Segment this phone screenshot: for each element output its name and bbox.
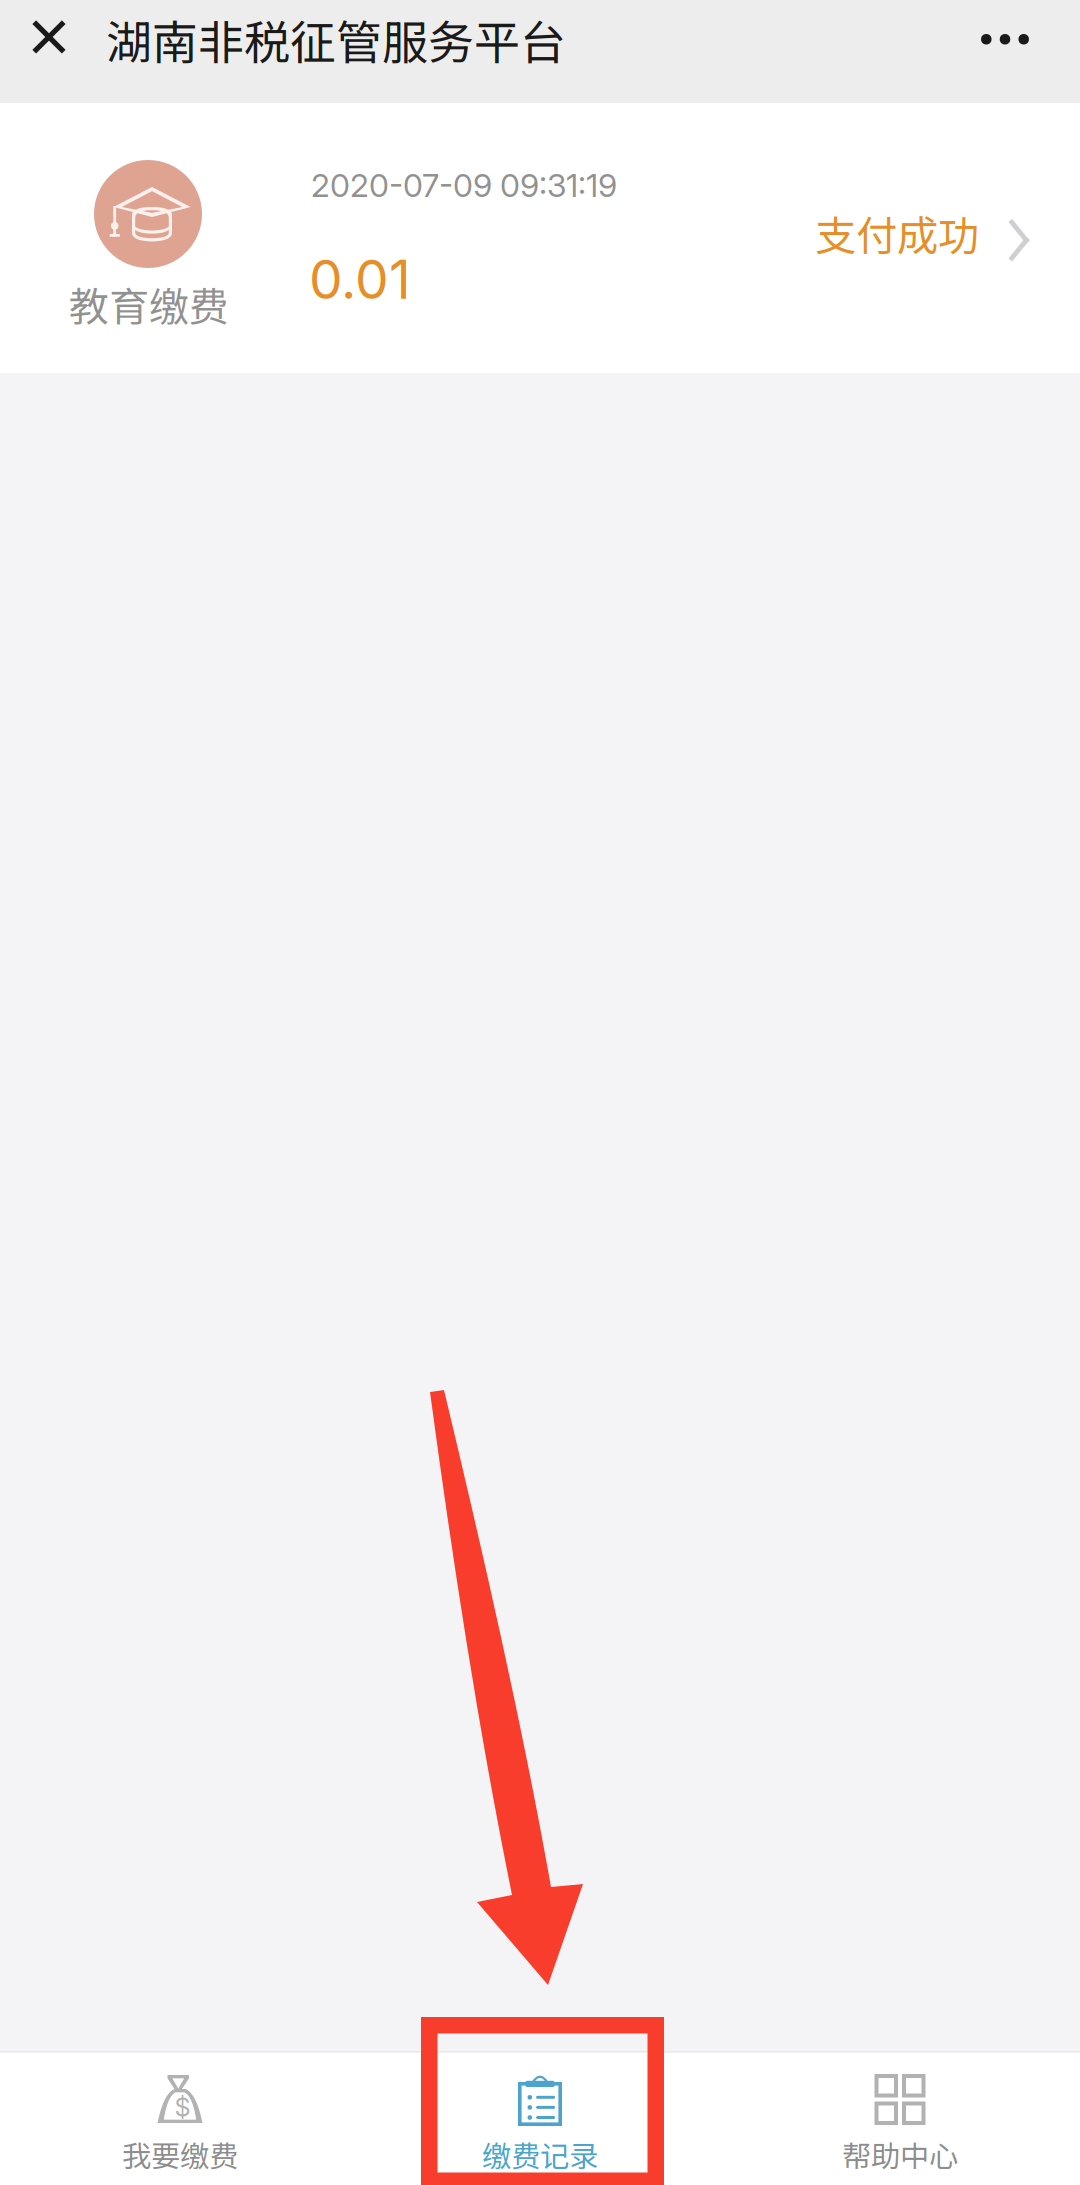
button[interactable]: 帮助中心 [720,2051,1080,2185]
staticText: 帮助中心 [842,2133,958,2175]
button[interactable]: 更多 [944,0,1080,103]
staticText: 0.01 [309,247,411,311]
staticText: 教育缴费 [69,275,229,333]
staticText: 我要缴费 [122,2133,238,2175]
staticText: 湖南非税征管服务平台 [106,6,566,73]
staticText: 支付成功 [815,203,979,263]
button[interactable]: 关闭 [0,0,104,103]
button[interactable]: 缴费记录 [360,2051,720,2185]
staticText: $ [174,2092,190,2123]
button[interactable]: $ [0,2051,360,2185]
button[interactable]: 教育缴费 [0,103,1080,373]
staticText: 2020-07-09 09:31:19 [311,166,617,205]
staticText: 缴费记录 [482,2133,598,2175]
